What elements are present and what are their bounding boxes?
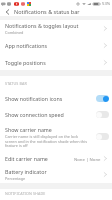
staticText: Notifications & toggles layout — [5, 22, 79, 29]
staticText: Carrier name is still displayed on the l… — [5, 134, 87, 148]
button[interactable]: Turn on — [96, 111, 109, 118]
button[interactable]: Show notification icons — [0, 90, 112, 106]
staticText: NOTIFICATION SHADE — [5, 191, 46, 196]
staticText: Toggle positions — [5, 59, 46, 66]
staticText: Edit carrier name — [5, 155, 48, 162]
staticText: Show connection speed — [5, 111, 64, 118]
staticText: Show carrier name — [5, 126, 52, 133]
staticText: STATUS BAR — [5, 81, 27, 86]
button[interactable]: Battery indicator — [0, 166, 112, 183]
button[interactable]: Back — [0, 7, 13, 16]
button[interactable]: Turn off — [96, 95, 109, 102]
button[interactable]: Edit carrier name — [0, 150, 112, 166]
staticText: Combined — [5, 30, 24, 35]
staticText: Percentage — [5, 176, 26, 181]
button[interactable]: Turn on — [96, 133, 109, 140]
staticText: Battery indicator — [5, 168, 47, 175]
button[interactable]: Toggle positions — [0, 54, 112, 70]
staticText: App notifications — [5, 42, 48, 49]
staticText: 53% — [102, 1, 111, 7]
staticText: Notifications & status bar — [14, 8, 80, 15]
button[interactable]: Show connection speed — [0, 106, 112, 123]
button[interactable]: Show carrier name — [0, 123, 112, 150]
staticText: None | None — [74, 156, 101, 162]
staticText: Show notification icons — [5, 95, 63, 102]
button[interactable]: App notifications — [0, 37, 112, 54]
button[interactable]: Notifications & toggles layout — [0, 20, 112, 37]
